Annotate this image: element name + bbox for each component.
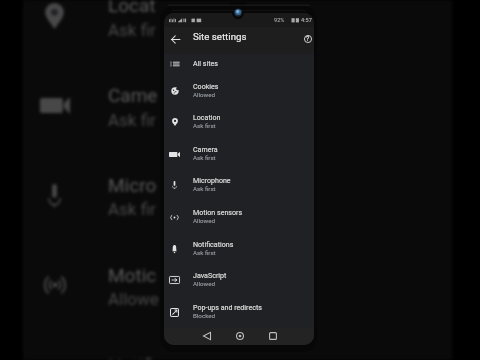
staticText: Camera — [193, 145, 218, 153]
staticText: Blocked — [193, 312, 215, 319]
staticText: Allowed — [193, 217, 215, 224]
button[interactable]: Motion sensors — [164, 206, 314, 231]
staticText: Allowed — [193, 280, 215, 287]
staticText: Micro — [108, 174, 157, 196]
staticText: Came — [108, 84, 158, 106]
button[interactable]: JavaScript — [164, 269, 314, 294]
staticText: JavaScript — [193, 271, 227, 279]
staticText: Ask fir — [108, 110, 156, 130]
staticText: Ask fir — [108, 199, 156, 219]
staticText: Allowe — [108, 289, 159, 309]
staticText: Motic — [108, 264, 157, 286]
staticText: Ask first — [193, 122, 216, 129]
staticText: Microphone — [193, 176, 231, 184]
button[interactable]: Camera — [164, 143, 314, 168]
button[interactable]: All sites — [164, 57, 314, 75]
staticText: 4:57 — [301, 17, 312, 24]
staticText: Site settings — [193, 31, 247, 42]
button[interactable]: Back — [199, 328, 215, 344]
button[interactable]: Notifications — [164, 238, 314, 263]
staticText: ? — [306, 35, 310, 43]
button[interactable]: Recent apps — [265, 328, 281, 344]
staticText: Motion sensors — [193, 208, 243, 216]
staticText: Ask first — [193, 249, 216, 256]
button[interactable]: Navigate up — [165, 29, 185, 49]
staticText: All sites — [193, 59, 218, 67]
staticText: Notifications — [193, 240, 234, 248]
button[interactable]: Cookies — [164, 80, 314, 105]
button[interactable]: Location — [164, 111, 314, 136]
button[interactable]: Help and feedback — [298, 29, 314, 49]
button[interactable]: Microphone — [164, 174, 314, 199]
staticText: Locat — [108, 0, 156, 16]
staticText: Cookies — [193, 82, 219, 90]
button[interactable]: Pop-ups and redirects — [164, 301, 314, 326]
staticText: Location — [193, 113, 221, 121]
staticText: 92% — [274, 17, 285, 24]
staticText: Ask first — [193, 154, 216, 161]
staticText: Allowed — [193, 91, 215, 98]
button[interactable]: Home — [232, 328, 248, 344]
staticText: Ask first — [193, 185, 216, 192]
staticText: Notifi — [108, 354, 154, 360]
staticText: Ask fir — [108, 20, 156, 40]
staticText: Pop-ups and redirects — [193, 303, 262, 311]
